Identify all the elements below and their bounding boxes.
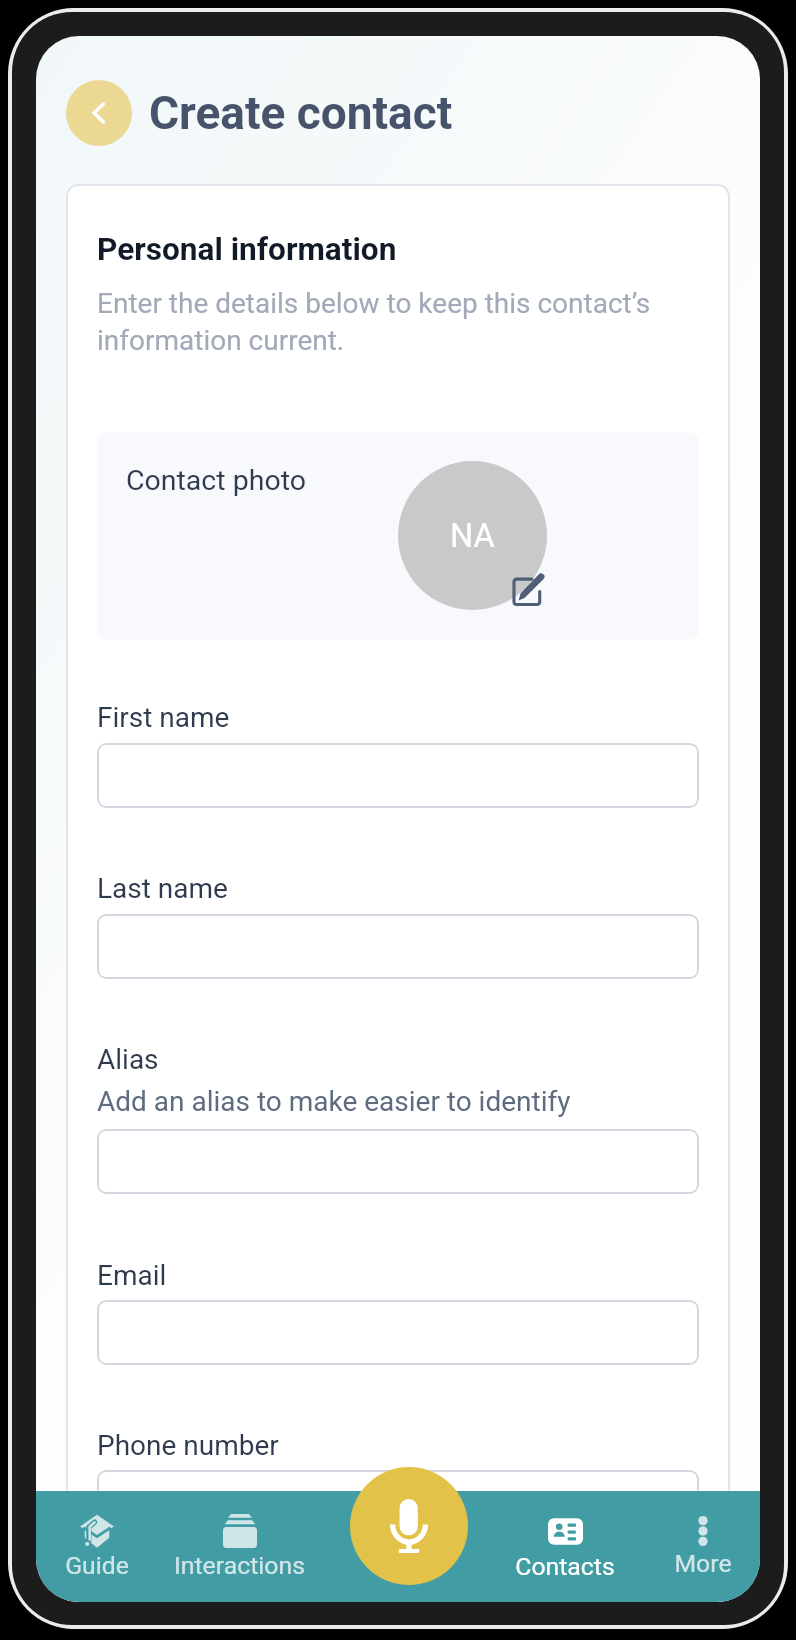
staticText: Enter the details below to keep this con… (97, 287, 699, 357)
staticText: Interactions (174, 1551, 305, 1580)
staticText: Create contact (149, 86, 453, 140)
button[interactable]: Back (66, 80, 132, 146)
button[interactable] (97, 743, 699, 808)
staticText: Add an alias to make easier to identify (97, 1085, 571, 1118)
button[interactable] (97, 1470, 699, 1535)
button[interactable]: Voice input (350, 1467, 468, 1585)
button[interactable]: Edit photo (512, 573, 545, 606)
staticText: Phone number (97, 1429, 279, 1462)
staticText: Guide (65, 1551, 129, 1580)
staticText: Last name (97, 872, 228, 905)
staticText: NA (450, 517, 495, 555)
staticText: Email (97, 1259, 167, 1292)
button[interactable] (97, 1129, 699, 1194)
button[interactable]: NA (398, 461, 547, 610)
staticText: First name (97, 701, 230, 734)
button[interactable] (97, 914, 699, 979)
button[interactable]: Guide (36, 1496, 169, 1588)
staticText: More (674, 1549, 732, 1578)
staticText: Personal information (97, 231, 397, 268)
button[interactable] (97, 1300, 699, 1365)
button[interactable]: Contacts (493, 1496, 637, 1588)
button[interactable]: Interactions (167, 1496, 311, 1588)
staticText: Contact photo (126, 464, 306, 497)
button[interactable]: More (631, 1496, 760, 1588)
staticText: Alias (97, 1043, 159, 1076)
staticText: Contacts (515, 1552, 615, 1581)
